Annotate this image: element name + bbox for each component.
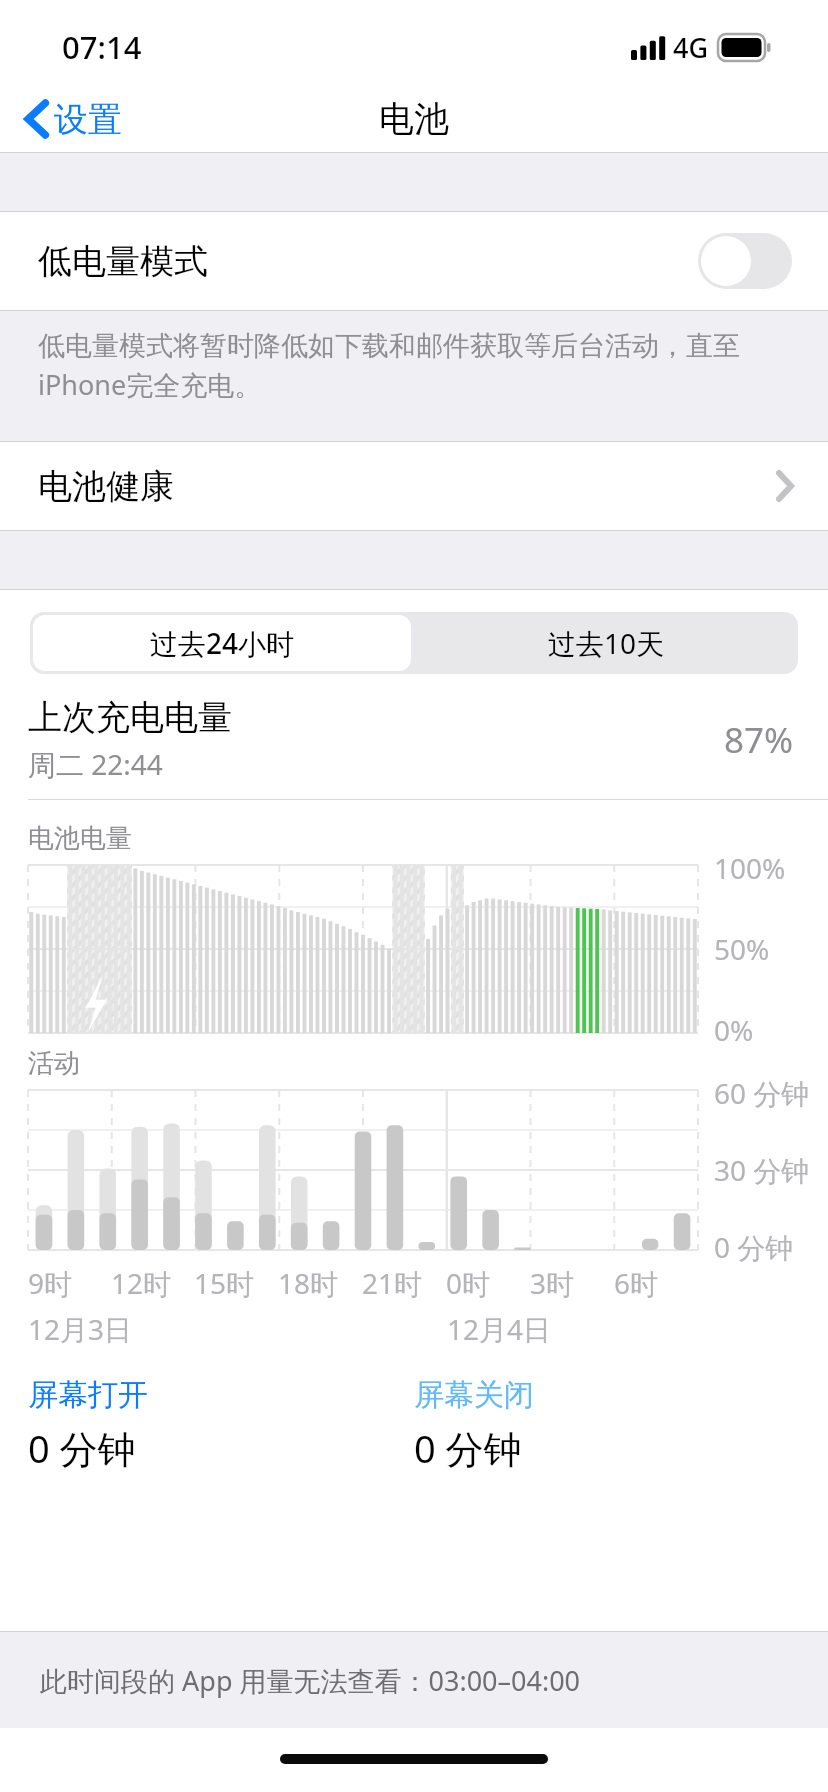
staticText: 50% bbox=[714, 930, 770, 968]
staticText: 屏幕关闭 bbox=[414, 1376, 534, 1414]
staticText: 12月3日 bbox=[28, 1310, 133, 1348]
button[interactable]: 电池健康 bbox=[0, 442, 828, 530]
staticText: 此时间段的 App 用量无法查看：03:00–04:00 bbox=[40, 1662, 581, 1699]
staticText: 3时 bbox=[530, 1264, 575, 1302]
button[interactable]: 过去24小时 bbox=[33, 615, 411, 671]
staticText: 100% bbox=[714, 849, 786, 887]
staticText: 周二 22:44 bbox=[28, 745, 163, 783]
staticText: 过去24小时 bbox=[150, 624, 295, 662]
staticText: 屏幕打开 bbox=[28, 1376, 148, 1414]
staticText: 设置 bbox=[54, 98, 122, 141]
staticText: 低电量模式 bbox=[38, 240, 208, 283]
staticText: 低电量模式将暂时降低如下载和邮件获取等后台活动，直至 iPhone完全充电。 bbox=[38, 329, 740, 403]
staticText: 0% bbox=[714, 1011, 754, 1049]
staticText: 电池 bbox=[379, 97, 449, 141]
button[interactable]: 屏幕关闭 bbox=[414, 1376, 800, 1474]
button[interactable]: 过去10天 bbox=[414, 612, 798, 674]
staticText: 4G bbox=[673, 29, 709, 66]
staticText: 0 分钟 bbox=[28, 1422, 136, 1474]
staticText: 07:14 bbox=[62, 26, 142, 68]
staticText: 上次充电电量 bbox=[28, 696, 232, 739]
staticText: 活动 bbox=[28, 1047, 80, 1080]
staticText: 87% bbox=[724, 716, 794, 764]
staticText: 21时 bbox=[362, 1264, 423, 1302]
staticText: 30 分钟 bbox=[714, 1151, 810, 1189]
staticText: 0 分钟 bbox=[414, 1422, 522, 1474]
staticText: 60 分钟 bbox=[714, 1074, 810, 1112]
staticText: 电池健康 bbox=[38, 465, 174, 508]
staticText: 15时 bbox=[194, 1264, 255, 1302]
button[interactable]: 低电量模式 bbox=[0, 212, 828, 310]
staticText: 6时 bbox=[614, 1264, 659, 1302]
staticText: 过去10天 bbox=[548, 624, 665, 662]
staticText: 12月4日 bbox=[447, 1310, 552, 1348]
staticText: 18时 bbox=[278, 1264, 339, 1302]
staticText: 9时 bbox=[28, 1264, 73, 1302]
button[interactable]: 屏幕打开 bbox=[28, 1376, 414, 1474]
staticText: 0 分钟 bbox=[714, 1228, 794, 1266]
button[interactable]: 低电量模式开关 bbox=[698, 233, 792, 289]
button[interactable]: 设置 bbox=[0, 86, 140, 152]
staticText: 电池电量 bbox=[28, 822, 132, 855]
staticText: 12时 bbox=[111, 1264, 172, 1302]
staticText: 0时 bbox=[446, 1264, 491, 1302]
